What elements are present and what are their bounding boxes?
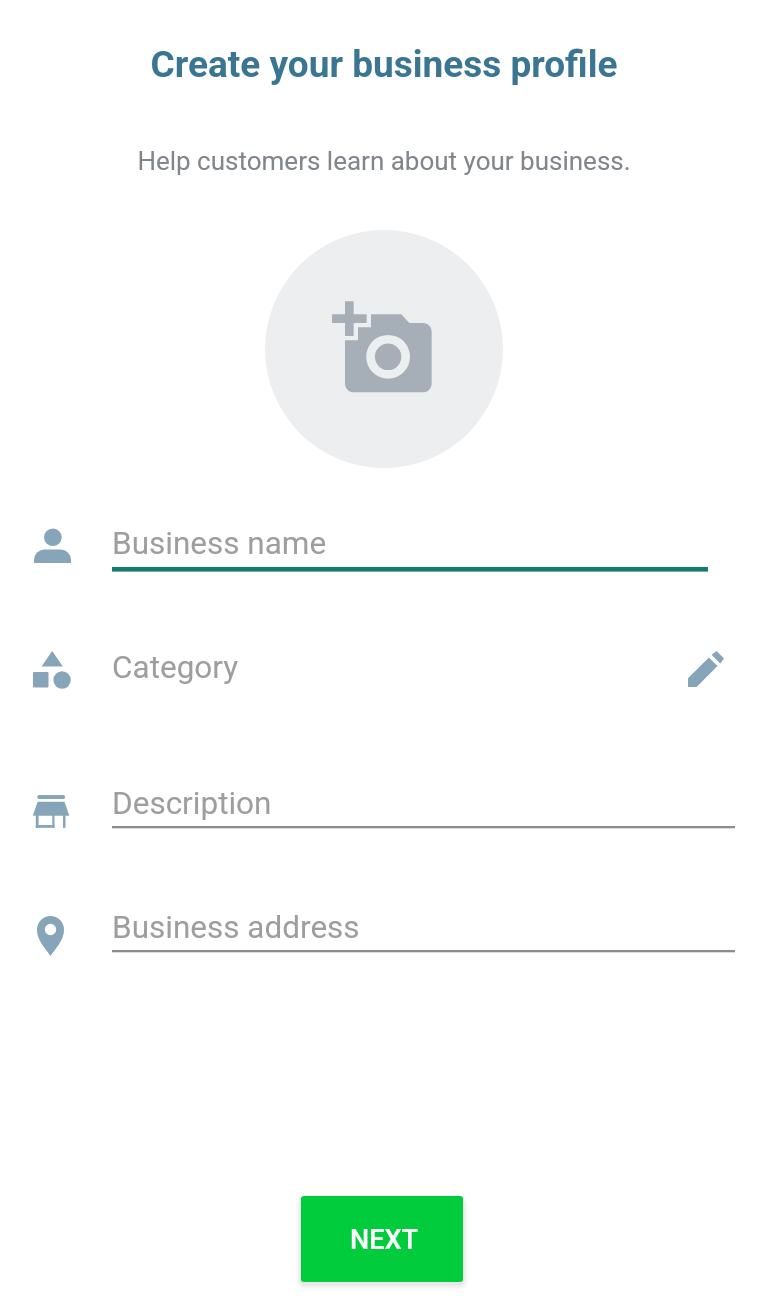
button[interactable]: Business name [0, 496, 768, 592]
staticText: Create your business profile [0, 43, 768, 86]
other: Edit category [688, 651, 724, 687]
staticText: Description [112, 785, 272, 822]
staticText: Business address [112, 909, 360, 946]
button[interactable]: Edit category [678, 641, 734, 697]
button[interactable]: Add business photo [265, 230, 503, 468]
staticText: Help customers learn about your business… [0, 146, 768, 176]
staticText: Business name [112, 525, 327, 562]
staticText: Category [112, 649, 239, 686]
button[interactable]: Business address [0, 880, 768, 976]
button[interactable]: Category [0, 620, 768, 716]
button[interactable]: NEXT [301, 1196, 463, 1282]
staticText: NEXT [350, 1224, 418, 1256]
button[interactable]: Description [0, 756, 768, 852]
